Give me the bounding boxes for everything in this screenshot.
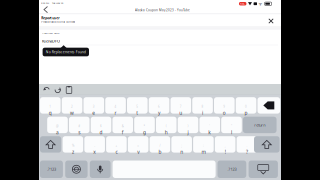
button[interactable]: 8	[192, 97, 213, 114]
button[interactable]: '	[199, 117, 220, 133]
staticText: n	[180, 149, 183, 155]
staticText: y	[158, 110, 160, 116]
button[interactable]: .	[237, 136, 257, 153]
button[interactable]: =	[128, 136, 148, 153]
staticText: 7	[180, 105, 182, 109]
button[interactable]: /	[150, 136, 170, 153]
staticText: Additional detail	[42, 31, 60, 35]
staticText: -	[94, 144, 95, 148]
staticText: e	[92, 110, 95, 116]
staticText: .?123	[227, 167, 236, 172]
button[interactable]: 6	[149, 97, 169, 114]
staticText: #	[78, 124, 80, 128]
staticText: f	[122, 129, 124, 136]
button[interactable]	[40, 136, 61, 153]
button[interactable]: +	[106, 136, 127, 153]
staticText: Alaska Coupon May 2023 - YouTube	[135, 8, 190, 12]
staticText: 3	[93, 105, 95, 109]
button[interactable]	[257, 97, 280, 114]
staticText: 8	[202, 105, 204, 109]
button[interactable]	[113, 160, 216, 178]
staticText: /	[159, 144, 160, 148]
button[interactable]: 9	[214, 97, 235, 114]
staticText: 1	[49, 105, 51, 109]
staticText: REC	[240, 2, 245, 5]
staticText: l	[231, 129, 232, 136]
staticText: v	[137, 149, 139, 155]
staticText: 0	[245, 105, 247, 109]
button[interactable]: 4	[105, 97, 126, 114]
staticText: ?	[246, 149, 248, 155]
staticText: a	[56, 129, 59, 136]
staticText: d	[99, 129, 102, 136]
staticText: !	[225, 149, 226, 155]
staticText: s	[78, 129, 80, 136]
staticText: 2	[71, 105, 73, 109]
staticText: 9	[223, 105, 225, 109]
button[interactable]: return	[243, 117, 276, 133]
button[interactable]: :	[193, 136, 214, 153]
staticText: Report user	[41, 16, 59, 20]
button[interactable]: Paste	[64, 85, 74, 95]
button[interactable]: .?123	[40, 160, 63, 178]
staticText: u	[179, 110, 182, 116]
button[interactable]: $	[91, 117, 111, 133]
button[interactable]	[249, 160, 278, 178]
staticText: o	[223, 110, 226, 116]
button[interactable]: Close	[266, 16, 275, 25]
staticText: 5	[136, 105, 138, 109]
button[interactable]: )	[178, 117, 198, 133]
button[interactable]: ;	[171, 136, 192, 153]
staticText: i	[202, 110, 203, 116]
button[interactable]: *	[134, 117, 155, 133]
button[interactable]: 1	[40, 97, 61, 114]
button[interactable]: #	[69, 117, 90, 133]
staticText: return	[254, 122, 265, 128]
button[interactable]	[90, 160, 111, 178]
button[interactable]: ,	[215, 136, 235, 153]
staticText: %	[72, 144, 74, 148]
button[interactable]: 3	[83, 97, 104, 114]
staticText: k	[208, 129, 211, 136]
staticText: 9:52 PM Tue May 23	[41, 1, 63, 4]
staticText: $	[100, 124, 102, 128]
button[interactable]: "	[221, 117, 242, 133]
button[interactable]: (	[156, 117, 176, 133]
staticText: +	[115, 144, 117, 148]
button[interactable]: %	[63, 136, 83, 153]
staticText: *	[143, 124, 145, 128]
button[interactable]: 5	[127, 97, 148, 114]
staticText: No Replacements Found	[46, 50, 86, 54]
button[interactable]: 0	[236, 97, 256, 114]
staticText: w	[70, 110, 74, 116]
staticText: ᯤ	[259, 1, 263, 6]
button[interactable]: Back	[41, 5, 51, 15]
button[interactable]: -	[84, 136, 105, 153]
button[interactable]: 2	[62, 97, 82, 114]
staticText: (	[166, 124, 167, 128]
staticText: '	[209, 124, 210, 128]
staticText: x	[93, 149, 96, 155]
button[interactable]: 7	[170, 97, 191, 114]
button[interactable]: Undo	[42, 85, 52, 95]
staticText: r	[114, 110, 116, 116]
button[interactable]: &	[112, 117, 133, 133]
staticText: =	[137, 144, 139, 148]
staticText: b	[158, 149, 161, 155]
staticText: p	[245, 110, 248, 116]
staticText: q	[49, 110, 52, 116]
staticText: @	[56, 124, 59, 128]
staticText: t	[136, 110, 138, 116]
button[interactable]	[65, 160, 88, 178]
button[interactable]: @	[47, 117, 68, 133]
button[interactable]: .?123	[217, 160, 246, 178]
staticText: z	[72, 149, 74, 155]
staticText: &	[122, 124, 124, 128]
staticText: ,	[225, 144, 226, 148]
staticText: Provide additional context	[41, 20, 75, 24]
staticText: 4	[114, 105, 116, 109]
button[interactable]: Redo	[53, 85, 63, 95]
button[interactable]	[254, 136, 280, 153]
